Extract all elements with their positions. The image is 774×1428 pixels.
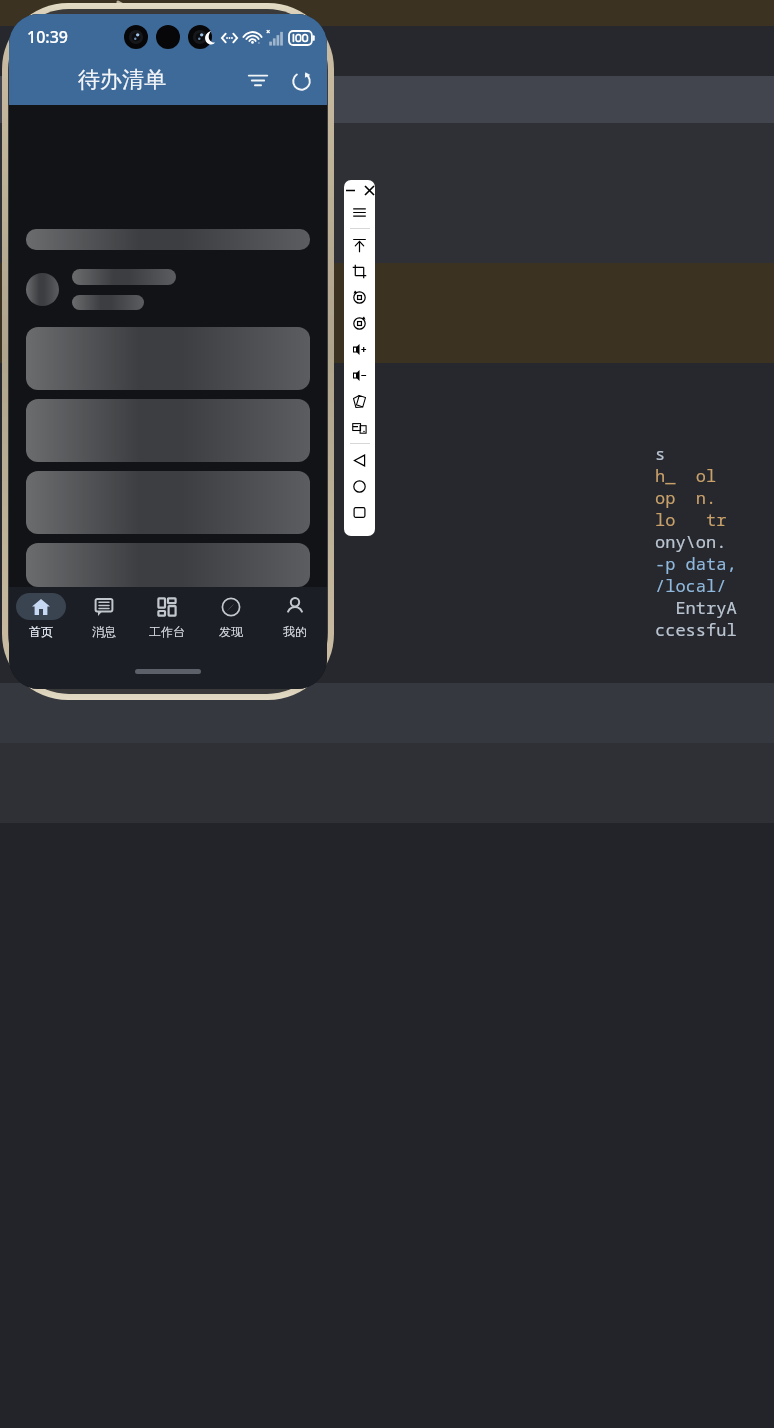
staticText: -p data, <box>655 552 737 575</box>
button[interactable]: 消息 <box>72 587 135 645</box>
button[interactable]: Upload <box>344 232 375 258</box>
button[interactable]: Back <box>344 447 375 473</box>
button[interactable]: Volume down <box>344 362 375 388</box>
staticText: 消息 <box>92 624 116 639</box>
staticText: ccessful <box>655 618 737 641</box>
button[interactable]: Close <box>363 184 375 196</box>
staticText: s <box>655 442 666 465</box>
button[interactable]: Rotate left <box>344 284 375 310</box>
button[interactable] <box>26 471 310 534</box>
button[interactable] <box>26 327 310 390</box>
button[interactable]: 工作台 <box>135 587 199 645</box>
button[interactable]: Rotate right <box>344 310 375 336</box>
staticText: h_ ol <box>655 464 717 487</box>
staticText: 工作台 <box>149 624 185 639</box>
staticText: 发现 <box>219 624 243 639</box>
staticText: 首页 <box>29 624 53 639</box>
button[interactable]: Home <box>344 473 375 499</box>
staticText: 待办清单 <box>78 66 166 94</box>
button[interactable]: 首页 <box>9 587 72 645</box>
button[interactable]: Multi window <box>344 414 375 440</box>
staticText: op n. <box>655 486 717 509</box>
button[interactable]: Recents <box>344 499 375 525</box>
button[interactable]: Volume up <box>344 336 375 362</box>
staticText: /local/ <box>655 574 727 597</box>
staticText: 10:39 <box>27 26 68 48</box>
button[interactable]: 刷新 <box>281 57 321 103</box>
staticText: EntryA <box>655 596 737 619</box>
button[interactable]: 发现 <box>199 587 263 645</box>
button[interactable]: Fold <box>344 388 375 414</box>
staticText: 我的 <box>283 624 307 639</box>
staticText: ony\on. <box>655 530 727 553</box>
button[interactable] <box>26 399 310 462</box>
staticText: lo tr <box>655 508 727 531</box>
button[interactable]: Menu <box>344 199 375 225</box>
button[interactable]: Minimize <box>344 184 356 196</box>
button[interactable]: 我的 <box>263 587 327 645</box>
button[interactable] <box>26 543 310 587</box>
button[interactable]: Crop <box>344 258 375 284</box>
button[interactable]: 筛选 <box>235 57 281 103</box>
